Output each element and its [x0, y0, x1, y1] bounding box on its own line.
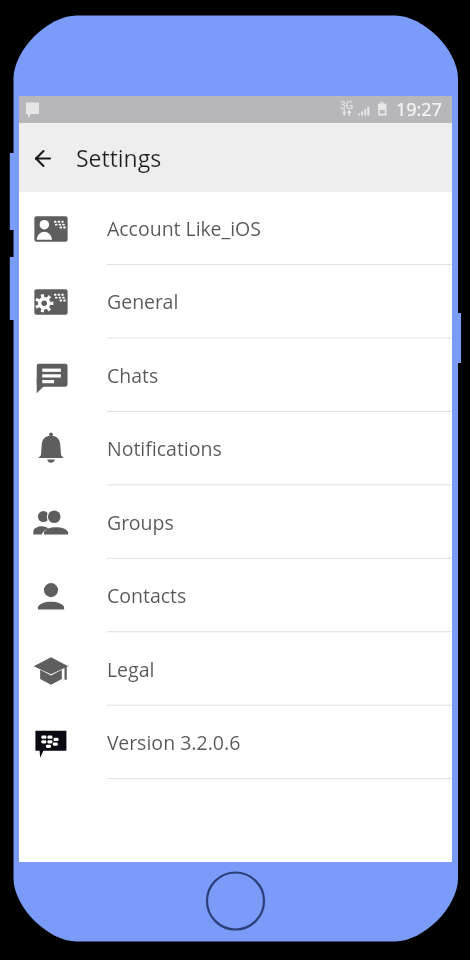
staticText: Settings [76, 142, 162, 173]
staticText: Version 3.2.0.6 [107, 729, 241, 756]
button[interactable]: Version 3.2.0.6 [19, 706, 452, 779]
staticText: 19:27 [396, 97, 442, 122]
staticText: Groups [107, 509, 174, 536]
button[interactable]: Back [17, 133, 67, 183]
button[interactable]: Legal [19, 633, 452, 706]
button[interactable]: Contacts [19, 559, 452, 632]
staticText: Notifications [107, 435, 222, 462]
staticText: General [107, 288, 179, 315]
button[interactable]: Notifications [19, 412, 452, 485]
staticText: Chats [107, 362, 159, 389]
staticText: Account Like_iOS [107, 215, 261, 242]
staticText: Contacts [107, 582, 187, 609]
staticText: 3G [340, 98, 353, 112]
button[interactable]: Groups [19, 486, 452, 559]
staticText: Legal [107, 656, 155, 683]
button[interactable]: General [19, 265, 452, 338]
button[interactable]: Account Like_iOS [19, 192, 452, 265]
button[interactable]: Chats [19, 339, 452, 412]
